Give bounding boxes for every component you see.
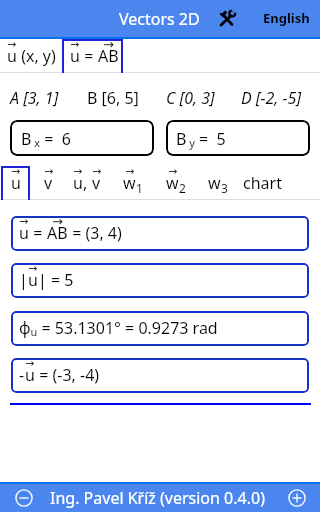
button[interactable]: [113, 3, 207, 34]
button[interactable]: [26, 166, 70, 200]
staticText: →: [73, 165, 83, 178]
staticText: u: [7, 45, 17, 67]
staticText: →: [7, 38, 17, 51]
staticText: →: [125, 165, 135, 178]
staticText: -: [19, 364, 25, 386]
button[interactable]: [4, 86, 64, 108]
staticText: = (-3, -4): [35, 364, 100, 386]
button[interactable]: [166, 120, 310, 156]
button[interactable]: [235, 86, 295, 108]
staticText: B [6, 5]: [87, 87, 139, 109]
staticText: AB: [47, 222, 68, 244]
staticText: chart: [243, 172, 282, 194]
button[interactable]: |: [11, 263, 309, 298]
staticText: | = 5: [38, 269, 74, 291]
button[interactable]: [44, 486, 274, 510]
staticText: →: [168, 165, 178, 178]
staticText: →: [70, 38, 80, 51]
staticText: →: [11, 165, 21, 178]
button[interactable]: [153, 166, 197, 200]
button[interactable]: Zoom in: [288, 489, 306, 507]
staticText: |: [19, 269, 28, 291]
staticText: u: [19, 222, 29, 244]
button[interactable]: u: [11, 216, 309, 251]
staticText: v: [44, 172, 53, 194]
staticText: u: [28, 269, 38, 291]
button[interactable]: [160, 86, 220, 108]
button[interactable]: [257, 3, 314, 34]
button[interactable]: [62, 39, 123, 73]
staticText: D [-2, -5]: [241, 87, 302, 109]
staticText: u: [25, 364, 35, 386]
staticText: u: [73, 172, 83, 194]
staticText: = (3, 4): [68, 222, 122, 244]
staticText: (x, y): [17, 45, 56, 67]
staticText: English: [263, 9, 310, 27]
staticText: →: [52, 216, 63, 229]
button[interactable]: [0, 39, 62, 73]
staticText: B y = 5: [176, 128, 226, 150]
button[interactable]: [194, 166, 238, 200]
staticText: Ing. Pavel Kříž (version 0.4.0): [50, 487, 265, 509]
staticText: →: [103, 37, 114, 52]
staticText: →: [25, 358, 35, 370]
staticText: 2: [179, 180, 186, 196]
staticText: =: [80, 45, 98, 67]
staticText: v: [92, 172, 101, 194]
staticText: u: [11, 172, 21, 194]
staticText: =: [29, 222, 47, 244]
button[interactable]: Tools: [218, 9, 237, 27]
button[interactable]: Zoom out: [15, 489, 33, 507]
button[interactable]: [110, 166, 154, 200]
staticText: φu = 53.1301° = 0.9273 rad: [19, 317, 218, 339]
staticText: →: [92, 165, 102, 178]
staticText: w: [123, 172, 136, 194]
staticText: C [0, 3]: [166, 87, 215, 109]
button[interactable]: [81, 86, 141, 108]
button[interactable]: [239, 166, 283, 200]
button[interactable]: [10, 120, 154, 156]
staticText: Vectors 2D: [119, 8, 200, 30]
button[interactable]: [0, 166, 37, 200]
staticText: 1: [136, 180, 143, 196]
staticText: →: [44, 165, 54, 178]
staticText: →: [19, 216, 29, 228]
staticText: ,: [83, 172, 92, 194]
staticText: w: [208, 172, 221, 194]
staticText: u: [70, 45, 80, 67]
button[interactable]: [63, 166, 107, 200]
button[interactable]: -: [11, 358, 309, 393]
staticText: A [3, 1]: [10, 87, 59, 109]
button[interactable]: φu = 53.1301° = 0.9273 rad: [11, 311, 309, 346]
staticText: 3: [221, 180, 228, 196]
staticText: →: [28, 263, 38, 275]
staticText: AB: [98, 45, 119, 67]
staticText: w: [166, 172, 179, 194]
staticText: B x = 6: [21, 128, 71, 150]
